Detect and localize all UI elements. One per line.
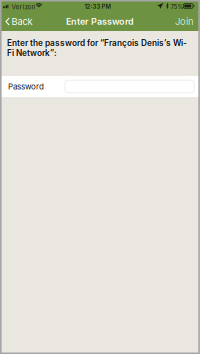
staticText: Enter Password — [66, 16, 134, 27]
staticText: Back — [11, 16, 32, 27]
staticText: Password — [8, 82, 44, 91]
staticText: Verizon — [11, 3, 35, 11]
button[interactable]: Join — [169, 12, 200, 31]
staticText: Enter the password for “François Denis’s… — [7, 38, 187, 58]
staticText: 75% — [171, 3, 184, 10]
staticText: Join — [175, 16, 194, 27]
button[interactable]: Back — [0, 12, 36, 31]
staticText: 12:33 PM — [85, 3, 111, 10]
